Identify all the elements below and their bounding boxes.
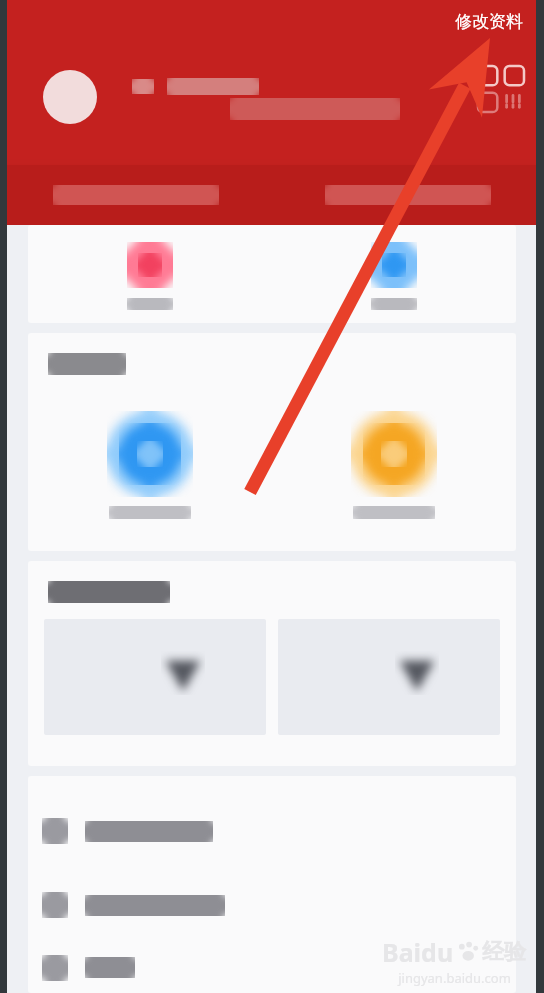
button[interactable] bbox=[272, 375, 516, 551]
button[interactable] bbox=[28, 794, 516, 868]
staticText: Baidu bbox=[382, 935, 454, 969]
staticText: jingyan.baidu.com bbox=[398, 969, 511, 987]
button[interactable] bbox=[43, 70, 97, 124]
button[interactable]: 修改资料 bbox=[453, 8, 525, 35]
button[interactable] bbox=[278, 619, 500, 735]
button[interactable] bbox=[28, 375, 272, 551]
button[interactable] bbox=[28, 225, 272, 323]
button[interactable] bbox=[28, 942, 516, 993]
button[interactable] bbox=[272, 225, 516, 323]
staticText: 经验 bbox=[482, 938, 526, 966]
staticText: 修改资料 bbox=[455, 11, 523, 32]
button[interactable] bbox=[0, 165, 272, 225]
button[interactable] bbox=[272, 165, 544, 225]
button[interactable] bbox=[28, 868, 516, 942]
button[interactable] bbox=[44, 619, 266, 735]
button[interactable]: 扫一扫二维码 bbox=[476, 64, 526, 114]
